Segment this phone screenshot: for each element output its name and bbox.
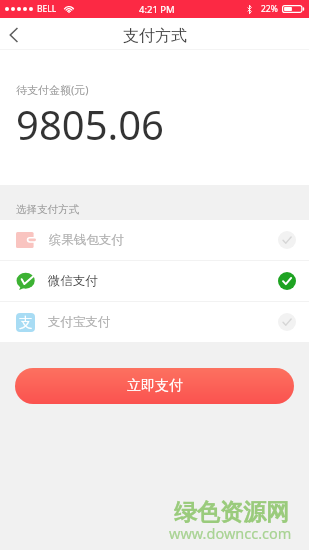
staticText: 22% bbox=[261, 3, 278, 15]
button[interactable]: 立即支付 bbox=[15, 368, 294, 404]
staticText: www.downcc.com bbox=[169, 523, 292, 543]
staticText: 缤果钱包支付 bbox=[49, 232, 124, 248]
staticText: 绿色资源网 bbox=[174, 498, 289, 527]
staticText: 立即支付 bbox=[127, 377, 183, 395]
button[interactable]: 微信支付 bbox=[0, 261, 309, 301]
staticText: BELL bbox=[37, 3, 57, 15]
staticText: 选择支付方式 bbox=[16, 203, 79, 216]
staticText: 微信支付 bbox=[48, 273, 98, 289]
staticText: 支付方式 bbox=[123, 26, 187, 46]
button[interactable]: Back bbox=[0, 18, 26, 50]
staticText: 9805.06 bbox=[16, 97, 164, 151]
button[interactable]: 支 bbox=[0, 302, 309, 342]
staticText: 待支付金额(元) bbox=[16, 82, 89, 97]
staticText: 支付宝支付 bbox=[48, 314, 111, 330]
button[interactable]: 缤果钱包支付 bbox=[0, 220, 309, 260]
staticText: 4:21 PM bbox=[139, 3, 175, 16]
staticText: 支 bbox=[19, 314, 33, 331]
